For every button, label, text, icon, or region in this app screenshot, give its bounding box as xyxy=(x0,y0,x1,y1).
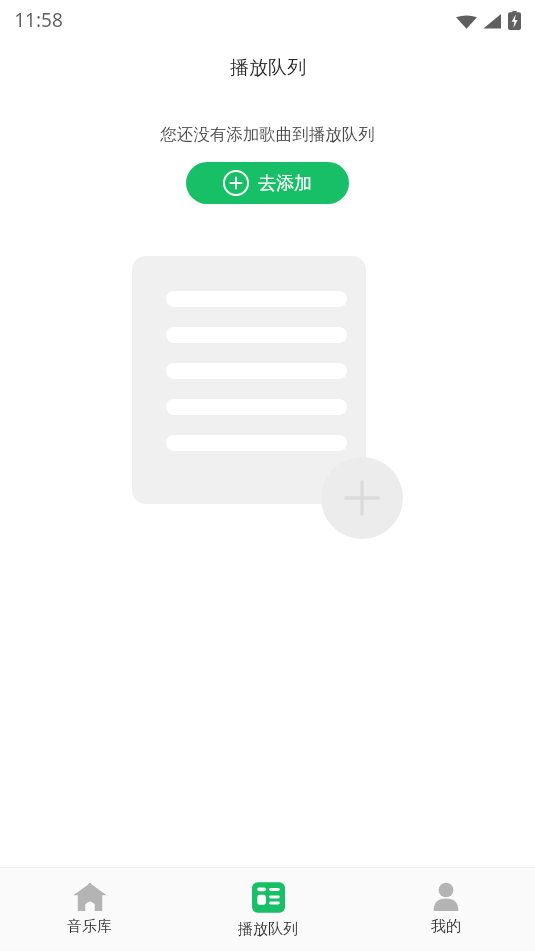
button[interactable]: 去添加 xyxy=(186,162,349,204)
staticText: 音乐库 xyxy=(67,917,112,936)
other: 我的 xyxy=(431,883,461,911)
button[interactable]: 播放队列 xyxy=(179,868,357,951)
other: 播放队列 xyxy=(252,881,285,914)
staticText: 我的 xyxy=(431,917,461,936)
other: 音乐库 xyxy=(73,883,107,911)
staticText: 播放队列 xyxy=(238,920,298,939)
button[interactable]: 音乐库 xyxy=(0,868,179,951)
staticText: 播放队列 xyxy=(230,56,306,80)
staticText: 去添加 xyxy=(258,172,312,195)
staticText: 您还没有添加歌曲到播放队列 xyxy=(160,124,375,145)
staticText: 11:58 xyxy=(14,7,63,33)
button[interactable]: 我的 xyxy=(357,868,535,951)
